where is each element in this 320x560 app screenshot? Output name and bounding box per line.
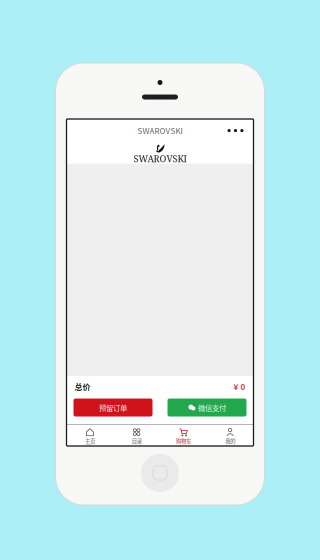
button[interactable]: 主页	[66, 424, 113, 446]
button[interactable]: 微信支付	[167, 398, 246, 416]
button[interactable]: 目录	[113, 424, 160, 446]
button[interactable]: 购物车	[160, 424, 207, 446]
staticText: 我的	[225, 437, 235, 445]
button[interactable]: More options	[222, 124, 248, 137]
staticText: 主页	[85, 437, 95, 445]
staticText: SWAROVSKI	[137, 125, 182, 136]
staticText: SWAROVSKI	[133, 153, 186, 165]
staticText: ¥ 0	[233, 381, 245, 392]
staticText: 微信支付	[198, 402, 226, 413]
staticText: 购物车	[176, 437, 191, 445]
staticText: 总价	[74, 381, 90, 392]
button[interactable]: 预留订单	[73, 398, 152, 416]
staticText: 预留订单	[99, 402, 127, 413]
button[interactable]: 我的	[207, 424, 254, 446]
staticText: 目录	[132, 437, 142, 445]
